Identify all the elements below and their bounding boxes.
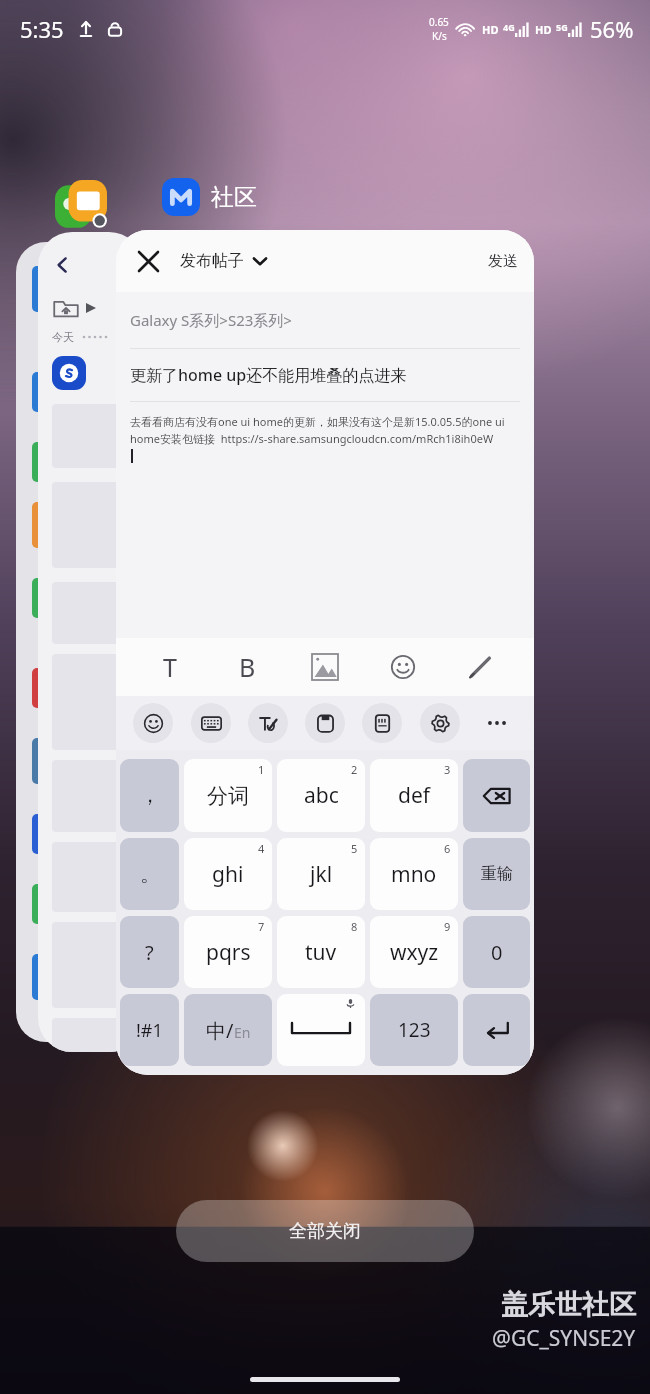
button[interactable]: !#1 (120, 994, 179, 1066)
staticText: abc (304, 781, 339, 810)
button[interactable]: Handwriting (248, 703, 288, 743)
button[interactable]: 中/ (184, 994, 272, 1066)
staticText: 5G (556, 21, 568, 33)
staticText: 1 (258, 762, 265, 777)
staticText: 盖乐世社区 (501, 1288, 636, 1322)
staticText: 全部关闭 (289, 1220, 361, 1243)
staticText: wxyz (390, 938, 439, 967)
staticText: 。 (140, 862, 160, 887)
staticText: 0.65 (429, 15, 449, 29)
button[interactable]: Enter (463, 994, 530, 1066)
button[interactable]: Draw (456, 643, 504, 691)
staticText: 今天 (52, 330, 74, 344)
staticText: 重输 (481, 864, 513, 884)
staticText: jkl (310, 860, 333, 889)
staticText: 社区 (211, 183, 257, 212)
staticText: mno (391, 860, 437, 889)
staticText: T (163, 650, 177, 684)
button[interactable]: 全部关闭 (176, 1200, 474, 1262)
staticText: 123 (398, 1017, 431, 1043)
button[interactable]: Space (277, 994, 365, 1066)
staticText: K/s (432, 29, 447, 43)
staticText: ， (140, 783, 160, 808)
button[interactable]: ， (120, 759, 179, 832)
staticText: @GC_SYNSE2Y (492, 1324, 636, 1353)
button[interactable]: 发送 (488, 252, 518, 271)
button[interactable]: 2 (277, 759, 365, 832)
staticText: Galaxy S系列>S23系列> (130, 310, 292, 330)
staticText: B (239, 650, 256, 684)
staticText: 9 (444, 919, 451, 934)
staticText: ghi (212, 860, 244, 889)
button[interactable]: 1 (184, 759, 272, 832)
staticText: 7 (258, 919, 265, 934)
staticText: 0 (491, 939, 503, 966)
staticText: 发送 (488, 252, 518, 271)
staticText: tuv (305, 938, 337, 967)
button[interactable]: 8 (277, 916, 365, 988)
staticText: 5 (351, 841, 358, 856)
staticText: HD (482, 22, 499, 37)
button[interactable]: 6 (370, 838, 458, 910)
button[interactable]: 123 (370, 994, 458, 1066)
staticText: 5:35 (20, 14, 64, 44)
button[interactable]: 。 (120, 838, 179, 910)
staticText: ? (145, 939, 154, 966)
staticText: 3 (444, 762, 451, 777)
staticText: 中/ (206, 1017, 234, 1044)
button[interactable]: 0 (463, 916, 530, 988)
button[interactable]: Keyboard (191, 703, 231, 743)
button[interactable]: 4 (184, 838, 272, 910)
button[interactable]: 更新了home up还不能用堆叠的点进来 (116, 349, 534, 401)
button[interactable]: Clipboard (305, 703, 345, 743)
button[interactable]: ? (120, 916, 179, 988)
button[interactable]: 重输 (463, 838, 530, 910)
staticText: 更新了home up还不能用堆叠的点进来 (130, 364, 407, 386)
staticText: 发布帖子 (180, 251, 244, 271)
button[interactable]: 3 (370, 759, 458, 832)
staticText: 4 (258, 841, 265, 856)
staticText: En (234, 1023, 251, 1042)
button[interactable]: Text tools (362, 703, 402, 743)
button[interactable]: 发布帖子 (180, 251, 268, 271)
staticText: 2 (351, 762, 358, 777)
button[interactable]: 5 (277, 838, 365, 910)
button[interactable]: Close (130, 243, 166, 279)
staticText: def (398, 781, 430, 810)
button[interactable]: T (146, 643, 194, 691)
button[interactable]: 9 (370, 916, 458, 988)
button[interactable]: 7 (184, 916, 272, 988)
staticText: 6 (444, 841, 451, 856)
button[interactable]: Settings (420, 703, 460, 743)
staticText: 8 (351, 919, 358, 934)
button[interactable]: Backspace (463, 759, 530, 832)
staticText: pqrs (206, 938, 251, 967)
button[interactable]: More (477, 703, 517, 743)
staticText: !#1 (136, 1018, 163, 1043)
button[interactable]: Image (301, 643, 349, 691)
staticText: 4G (503, 21, 515, 33)
staticText: 分词 (207, 783, 249, 809)
staticText: 去看看商店有没有one ui home的更新，如果没有这个是新15.0.05.5… (130, 414, 520, 447)
button[interactable]: Galaxy S系列>S23系列> (116, 292, 534, 348)
button[interactable]: B (223, 643, 271, 691)
staticText: 56% (590, 14, 634, 44)
button[interactable]: Emoji (379, 643, 427, 691)
staticText: HD (535, 22, 552, 37)
button[interactable]: Emoji (133, 703, 173, 743)
